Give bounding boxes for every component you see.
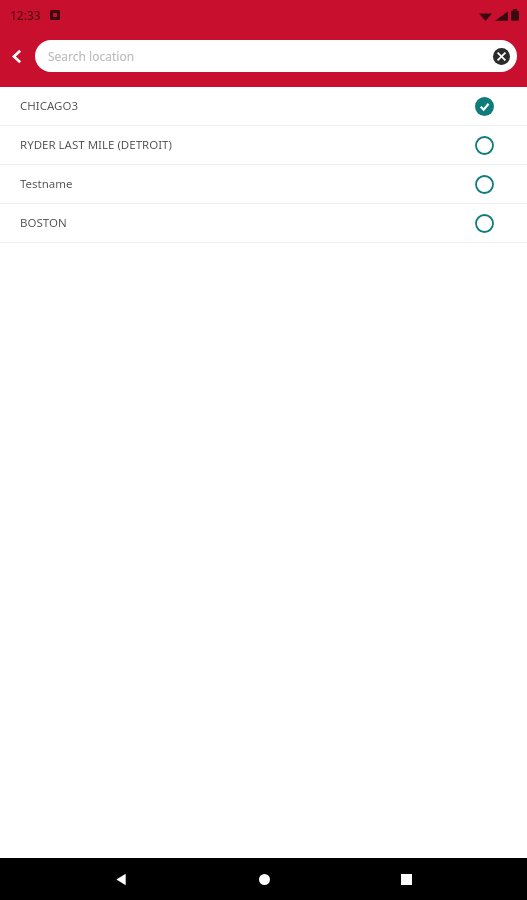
button[interactable]: Clear search	[485, 40, 517, 72]
button[interactable]: CHICAGO3	[0, 87, 527, 125]
staticText: 12:33	[10, 7, 41, 23]
button[interactable]: RYDER LAST MILE (DETROIT)	[0, 126, 527, 164]
staticText: RYDER LAST MILE (DETROIT)	[20, 137, 473, 153]
button[interactable]: Recent apps	[382, 858, 430, 900]
staticText: CHICAGO3	[20, 98, 473, 114]
staticText: BOSTON	[20, 215, 473, 231]
staticText: Testname	[20, 176, 473, 192]
staticText: Search location	[48, 48, 485, 64]
button[interactable]: Back	[97, 858, 145, 900]
button[interactable]: Testname	[0, 165, 527, 203]
button[interactable]: Home	[240, 858, 288, 900]
button[interactable]: Search location	[35, 40, 517, 72]
button[interactable]: BOSTON	[0, 204, 527, 242]
button[interactable]: Back	[0, 36, 34, 76]
